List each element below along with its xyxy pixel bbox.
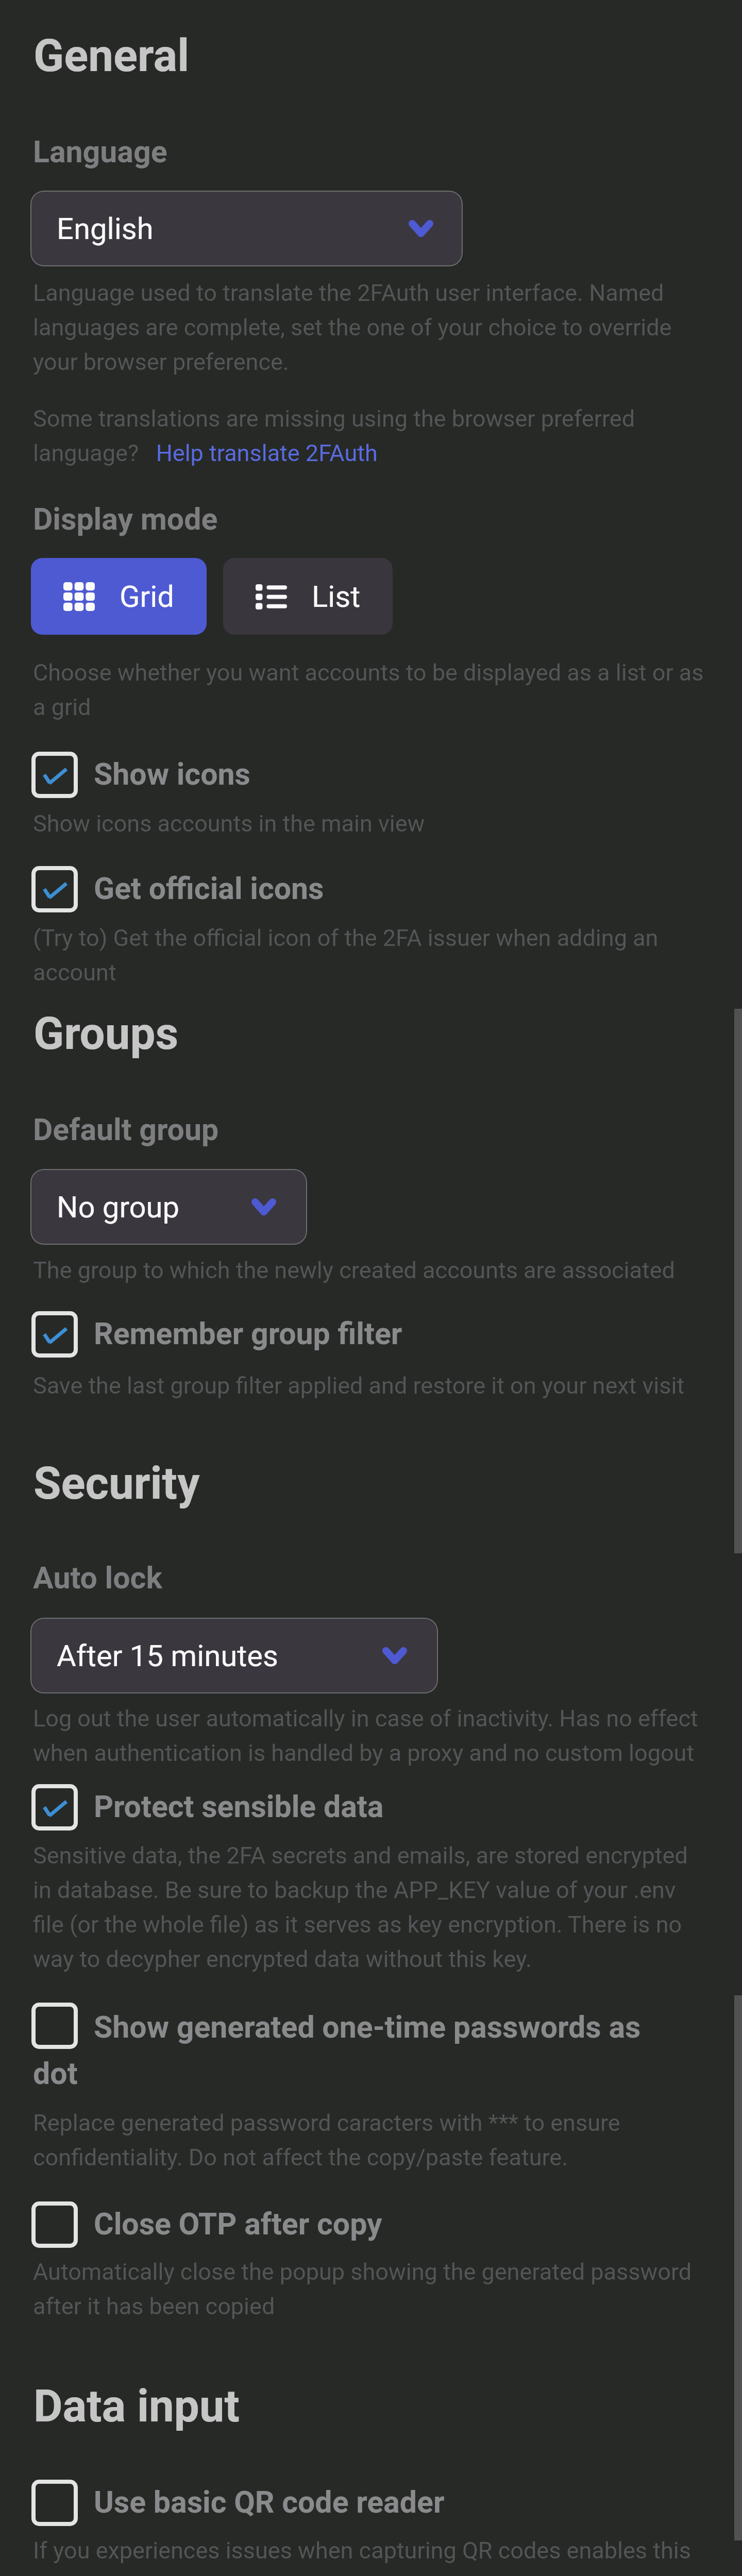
- staticText: Replace generated password caracters wit…: [33, 2109, 710, 2171]
- button[interactable]: Direct input: [0, 0, 742, 2576]
- staticText: Auto lock: [33, 1560, 162, 1596]
- staticText: Default group: [33, 1112, 219, 1147]
- staticText: Sensitive data, the 2FA secrets and emai…: [33, 1842, 710, 1973]
- button[interactable]: Protect sensible data: [0, 0, 742, 2576]
- button[interactable]: No group: [30, 1169, 307, 1245]
- staticText: Security: [33, 1457, 200, 1510]
- staticText: (Try to) Get the official icon of the 2F…: [33, 924, 710, 986]
- button[interactable]: Close OTP after copy: [0, 0, 742, 2576]
- staticText: Log out the user automatically in case o…: [33, 1705, 710, 1767]
- staticText: Language: [33, 134, 167, 170]
- button[interactable]: After 15 minutes: [30, 1618, 438, 1693]
- staticText: Get official icons: [94, 871, 712, 906]
- button[interactable]: Show generated one-time passwords as: [0, 0, 742, 2576]
- staticText: Grid: [120, 579, 174, 614]
- staticText: Remember group filter: [94, 1316, 712, 1351]
- button[interactable]: Show icons: [0, 0, 742, 2576]
- button[interactable]: List: [223, 558, 393, 635]
- staticText: Show icons: [94, 756, 712, 792]
- button[interactable]: Grid: [31, 558, 207, 635]
- staticText: Protect sensible data: [94, 1789, 712, 1824]
- staticText: Use basic QR code reader: [94, 2484, 712, 2520]
- staticText: Show icons accounts in the main view: [33, 810, 710, 837]
- staticText: Groups: [33, 1007, 179, 1060]
- staticText: Automatically close the popup showing th…: [33, 2258, 710, 2320]
- staticText: English: [57, 211, 154, 246]
- staticText: The group to which the newly created acc…: [33, 1257, 710, 1284]
- staticText: No group: [57, 1190, 180, 1225]
- staticText: Save the last group filter applied and r…: [33, 1372, 710, 1399]
- staticText: Data input: [33, 2380, 240, 2432]
- staticText: If you experiences issues when capturing…: [33, 2537, 710, 2576]
- staticText: List: [312, 579, 361, 614]
- staticText: Language used to translate the 2FAuth us…: [33, 279, 710, 376]
- staticText: General: [33, 29, 190, 82]
- staticText: Display mode: [33, 501, 218, 537]
- staticText: Choose whether you want accounts to be d…: [33, 659, 710, 721]
- button[interactable]: English: [30, 191, 463, 266]
- button[interactable]: Use basic QR code reader: [0, 0, 742, 2576]
- button[interactable]: Get official icons: [0, 0, 742, 2576]
- staticText: Some translations are missing using the …: [33, 405, 710, 467]
- staticText: dot: [33, 2056, 78, 2091]
- staticText: Show generated one-time passwords as: [94, 2009, 712, 2045]
- button[interactable]: Remember group filter: [0, 0, 742, 2576]
- staticText: Close OTP after copy: [94, 2206, 712, 2242]
- staticText: After 15 minutes: [57, 1638, 278, 1673]
